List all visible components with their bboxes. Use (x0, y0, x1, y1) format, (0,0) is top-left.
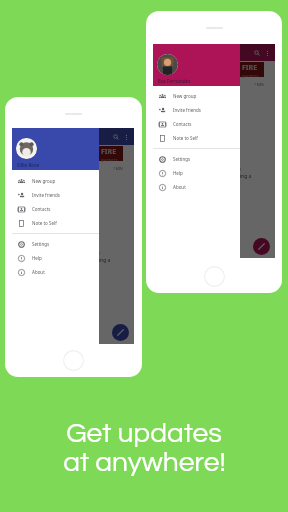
staticText: Note to Self (32, 220, 57, 226)
staticText: FIRE (242, 63, 258, 73)
button[interactable]: Compose message (253, 238, 270, 255)
staticText: someone and start messaging a (176, 173, 252, 180)
button[interactable]: Note to Self (153, 131, 240, 145)
staticText: Contacts (32, 206, 51, 212)
staticText: Invite friends (32, 192, 60, 198)
staticText: at anywhere! (63, 448, 226, 477)
staticText: Get updates (66, 419, 222, 448)
button[interactable]: About (12, 265, 99, 279)
button[interactable]: Note to Self (12, 216, 99, 230)
button[interactable]: Search (110, 131, 121, 142)
staticText: Settings (32, 241, 50, 247)
button[interactable]: About (153, 180, 240, 194)
staticText: New group (173, 93, 197, 99)
button[interactable]: FIRE (12, 146, 123, 161)
button[interactable]: New group (153, 89, 240, 103)
button[interactable]: More options (262, 48, 272, 58)
button[interactable]: Compose message (112, 324, 129, 341)
staticText: 1 MIN (254, 82, 264, 87)
button[interactable]: Help (12, 251, 99, 265)
staticText: someone and start messaging a (35, 257, 111, 264)
button[interactable]: Contacts (12, 202, 99, 216)
staticText: Ollie Rose (17, 162, 40, 168)
staticText: gunners (101, 157, 118, 162)
button[interactable]: Help (153, 166, 240, 180)
button[interactable]: Invite friends (153, 103, 240, 117)
staticText: Note to Self (173, 135, 198, 141)
button[interactable]: Contacts (153, 117, 240, 131)
button[interactable]: Search (251, 47, 262, 58)
button[interactable]: More options (121, 132, 131, 142)
staticText: Use Messages to write (47, 250, 100, 257)
staticText: Contacts (173, 121, 192, 127)
staticText: About (32, 269, 45, 275)
staticText: About (173, 184, 186, 190)
staticText: Use Messages to write (188, 166, 241, 173)
button[interactable]: New group (12, 174, 99, 188)
button[interactable]: FIRE (153, 62, 264, 77)
staticText: 1 MIN (113, 166, 123, 171)
staticText: gunners (242, 73, 259, 78)
staticText: New group (32, 178, 56, 184)
button[interactable]: Settings (153, 152, 240, 166)
button[interactable]: Settings (12, 237, 99, 251)
staticText: Invite friends (173, 107, 201, 113)
staticText: Eva Fernández (158, 78, 191, 84)
staticText: FIRE (101, 147, 117, 157)
staticText: Help (173, 170, 183, 176)
staticText: Help (32, 255, 42, 261)
button[interactable]: Invite friends (12, 188, 99, 202)
staticText: Settings (173, 156, 191, 162)
